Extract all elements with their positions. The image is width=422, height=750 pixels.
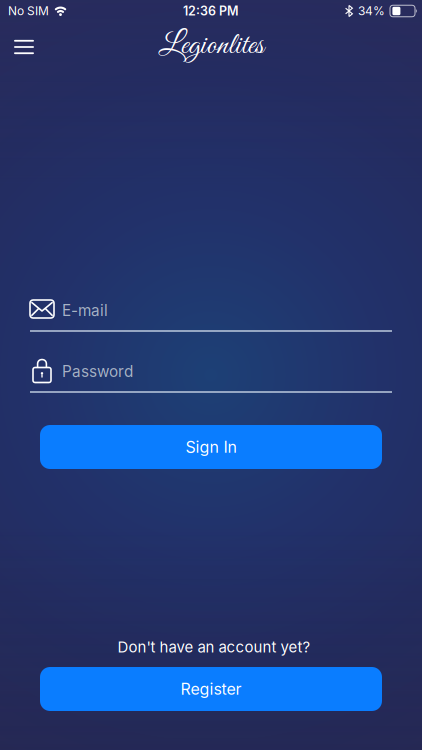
button[interactable]: E-mail [30, 292, 392, 326]
staticText: No SIM [8, 4, 49, 18]
button[interactable]: Sign In [40, 425, 382, 469]
staticText: Don't have an account yet? [117, 638, 310, 656]
staticText: Legionlites [158, 26, 263, 66]
staticText: Sign In [185, 437, 236, 457]
staticText: E-mail [62, 301, 108, 320]
button[interactable]: Register [40, 667, 382, 711]
staticText: Password [62, 362, 133, 381]
staticText: Register [180, 679, 241, 699]
staticText: 34% [358, 4, 385, 18]
button[interactable]: Menu [2, 29, 46, 65]
staticText: 12:36 PM [183, 3, 239, 18]
button[interactable]: Password [30, 353, 392, 387]
